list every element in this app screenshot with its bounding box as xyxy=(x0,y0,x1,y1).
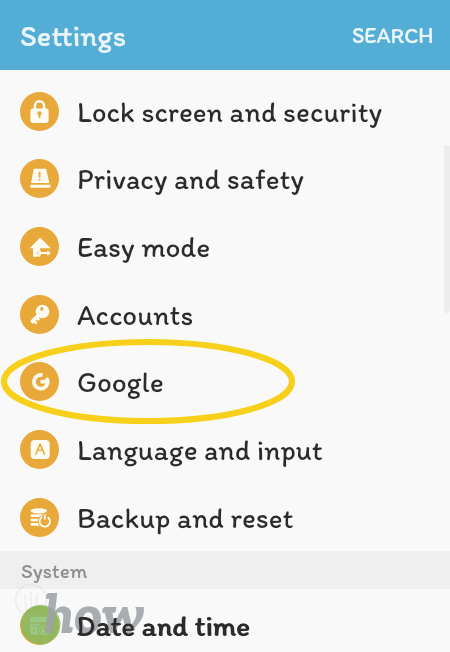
staticText: System xyxy=(21,558,88,583)
staticText: Date and time xyxy=(76,608,250,643)
staticText: Language and input xyxy=(77,432,323,467)
button[interactable]: Language and input xyxy=(0,415,450,483)
button[interactable]: Easy mode xyxy=(0,212,450,280)
button[interactable]: Privacy and safety xyxy=(0,144,450,212)
button[interactable]: Date and time xyxy=(0,591,450,652)
staticText: SEARCH xyxy=(352,22,434,48)
button[interactable]: SEARCH xyxy=(334,10,450,60)
staticText: how xyxy=(44,578,145,648)
staticText: Backup and reset xyxy=(77,500,294,535)
staticText: Lock screen and security xyxy=(77,94,383,129)
staticText: Accounts xyxy=(77,297,194,332)
button[interactable]: Accounts xyxy=(0,280,450,348)
staticText: Settings xyxy=(20,17,126,53)
button[interactable]: Lock screen and security xyxy=(0,77,450,145)
staticText: Date and time xyxy=(77,608,251,643)
button[interactable]: Google xyxy=(0,347,450,415)
button[interactable]: Backup and reset xyxy=(0,483,450,551)
staticText: Privacy and safety xyxy=(77,161,304,196)
staticText: Easy mode xyxy=(77,229,211,264)
staticText: Google xyxy=(77,364,164,399)
